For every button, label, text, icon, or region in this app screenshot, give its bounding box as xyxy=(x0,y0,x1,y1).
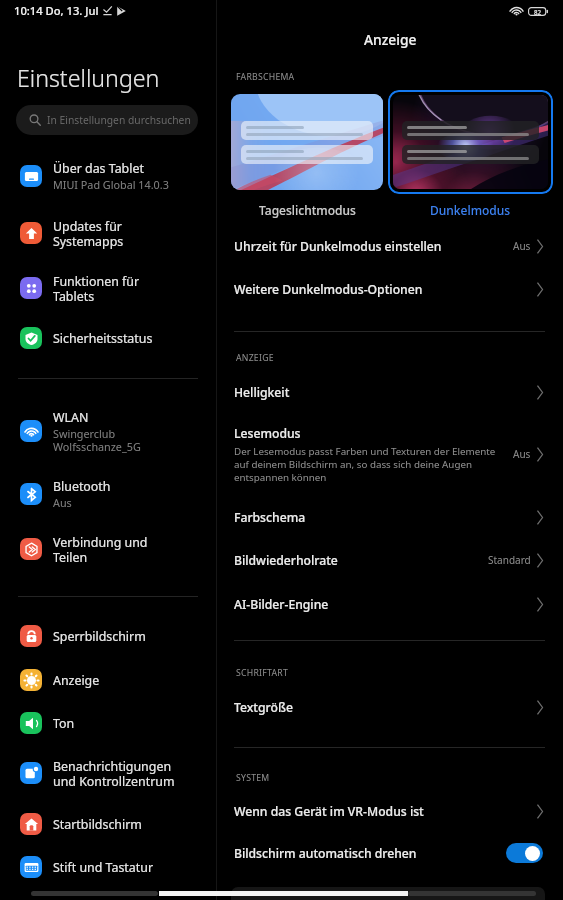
staticText: Stift und Tastatur xyxy=(53,859,154,876)
staticText: Bildschirm automatisch drehen xyxy=(234,845,506,862)
staticText: Einstellungen xyxy=(17,62,160,94)
staticText: Über das Tablet xyxy=(53,160,144,177)
staticText: Weitere Dunkelmodus-Optionen xyxy=(234,281,423,298)
button[interactable]: Lesemodus xyxy=(217,416,563,492)
staticText: Ton xyxy=(53,715,75,732)
staticText: Bildwiederholrate xyxy=(234,552,338,569)
button[interactable]: Startbildschirm xyxy=(0,802,216,846)
button[interactable]: Sicherheitsstatus xyxy=(0,316,216,360)
staticText: Lesemodus xyxy=(234,425,301,442)
button[interactable]: In Einstellungen durchsuchen xyxy=(16,105,198,135)
staticText: WLAN xyxy=(53,409,89,426)
button[interactable]: Bluetooth xyxy=(0,472,216,516)
button[interactable]: AI-Bilder-Engine xyxy=(217,583,563,625)
button[interactable]: Uhrzeit für Dunkelmodus einstellen xyxy=(217,225,563,267)
button[interactable]: Über das Tablet xyxy=(0,154,216,198)
staticText: In Einstellungen durchsuchen xyxy=(47,113,191,127)
staticText: Uhrzeit für Dunkelmodus einstellen xyxy=(234,238,442,255)
button[interactable] xyxy=(231,94,383,190)
staticText: Bluetooth xyxy=(53,478,111,495)
button[interactable]: Bildwiederholrate xyxy=(217,539,563,581)
button[interactable]: Sperrbildschirm xyxy=(0,614,216,658)
staticText: Farbschema xyxy=(234,509,306,526)
staticText: Aus xyxy=(513,447,531,461)
button[interactable]: Anzeige xyxy=(0,658,216,702)
staticText: Verbindung und Teilen xyxy=(53,534,148,565)
staticText: AI-Bilder-Engine xyxy=(234,596,329,613)
button[interactable]: Verbindung und Teilen xyxy=(0,527,216,571)
staticText: SCHRIFTART xyxy=(236,667,289,679)
staticText: SYSTEM xyxy=(236,772,270,784)
staticText: Updates für Systemapps xyxy=(53,218,124,249)
staticText: Der Lesemodus passt Farben und Texturen … xyxy=(234,445,502,484)
staticText: Helligkeit xyxy=(234,384,290,401)
staticText: Wenn das Gerät im VR-Modus ist xyxy=(234,803,424,820)
staticText: Sperrbildschirm xyxy=(53,628,146,645)
staticText: Aus xyxy=(513,239,531,253)
staticText: Sicherheitsstatus xyxy=(53,330,153,347)
staticText: Startbildschirm xyxy=(53,816,142,833)
staticText: Tageslichtmodus xyxy=(259,202,356,218)
staticText: Anzeige xyxy=(364,30,417,49)
staticText: Standard xyxy=(488,553,531,567)
staticText: Funktionen für Tablets xyxy=(53,273,140,304)
staticText: MIUI Pad Global 14.0.3 xyxy=(53,177,169,192)
staticText: Benachrichtigungen und Kontrollzentrum xyxy=(53,758,175,789)
staticText: ANZEIGE xyxy=(236,352,274,364)
staticText: 82 xyxy=(534,8,542,16)
button[interactable]: Funktionen für Tablets xyxy=(0,266,216,310)
staticText: Aus xyxy=(53,495,72,510)
staticText: Textgröße xyxy=(234,699,293,716)
button[interactable]: Helligkeit xyxy=(217,371,563,413)
button[interactable]: Ton xyxy=(0,701,216,745)
staticText: FARBSCHEMA xyxy=(236,71,295,83)
staticText: Dunkelmodus xyxy=(430,202,511,218)
button[interactable]: Textgröße xyxy=(217,686,563,728)
staticText: 10:14 Do, 13. Jul xyxy=(14,3,99,18)
button[interactable]: Updates für Systemapps xyxy=(0,211,216,255)
staticText: Anzeige xyxy=(53,672,100,689)
button[interactable]: WLAN xyxy=(0,409,216,453)
button[interactable]: Farbschema xyxy=(217,496,563,538)
button[interactable]: Stift und Tastatur xyxy=(0,845,216,889)
button[interactable]: Benachrichtigungen und Kontrollzentrum xyxy=(0,751,216,795)
button[interactable]: Bildschirm automatisch drehen xyxy=(217,832,563,874)
button[interactable]: Wenn das Gerät im VR-Modus ist xyxy=(217,790,563,832)
staticText: Swingerclub Wolfsschanze_5G xyxy=(53,426,141,453)
button[interactable]: Weitere Dunkelmodus-Optionen xyxy=(217,268,563,310)
button[interactable] xyxy=(388,90,553,194)
